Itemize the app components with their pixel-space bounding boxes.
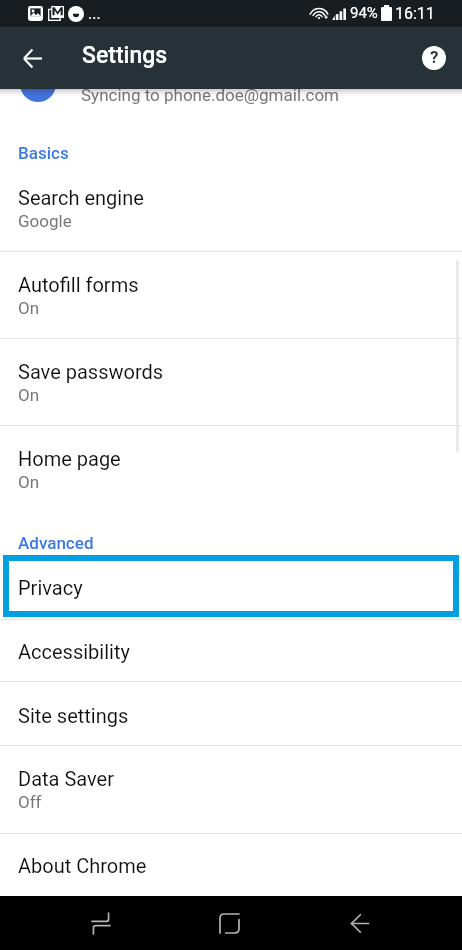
staticText: Save passwords xyxy=(18,360,164,383)
staticText: Home page xyxy=(18,447,121,470)
button[interactable]: Home xyxy=(205,899,253,947)
button[interactable]: Help and feedback xyxy=(410,34,458,82)
staticText: Accessibility xyxy=(18,640,130,663)
staticText: On xyxy=(18,472,40,492)
staticText: Autofill forms xyxy=(18,273,139,296)
button[interactable]: About Chrome xyxy=(0,833,462,890)
staticText: Data Saver xyxy=(18,767,114,790)
button[interactable]: Autofill forms xyxy=(0,251,462,338)
staticText: ... xyxy=(88,4,101,23)
button[interactable]: Save passwords xyxy=(0,338,462,425)
button[interactable]: Site settings xyxy=(0,683,462,745)
staticText: Off xyxy=(18,792,42,812)
button[interactable]: Back xyxy=(336,899,384,947)
staticText: ? xyxy=(430,47,439,67)
button[interactable]: Navigate up xyxy=(9,34,57,82)
staticText: 16:11 xyxy=(395,4,435,23)
staticText: Search engine xyxy=(18,186,144,209)
staticText: Syncing to phone.doe@gmail.com xyxy=(81,85,340,105)
staticText: About Chrome xyxy=(18,854,147,877)
staticText: Privacy xyxy=(18,576,83,599)
staticText: Site settings xyxy=(18,704,129,727)
button[interactable]: Data Saver xyxy=(0,745,462,833)
button[interactable]: Privacy xyxy=(3,555,459,617)
staticText: Advanced xyxy=(18,533,94,553)
staticText: Google xyxy=(18,211,72,231)
staticText: 94% xyxy=(350,4,378,22)
staticText: Settings xyxy=(82,42,168,69)
button[interactable]: Syncing to phone.doe@gmail.com xyxy=(0,66,462,116)
staticText: On xyxy=(18,385,40,405)
button[interactable]: Accessibility xyxy=(0,619,462,681)
button[interactable]: Search engine xyxy=(0,164,462,251)
button[interactable]: Recent apps xyxy=(77,899,125,947)
staticText: On xyxy=(18,298,40,318)
staticText: Basics xyxy=(18,143,69,163)
button[interactable]: Home page xyxy=(0,425,462,512)
